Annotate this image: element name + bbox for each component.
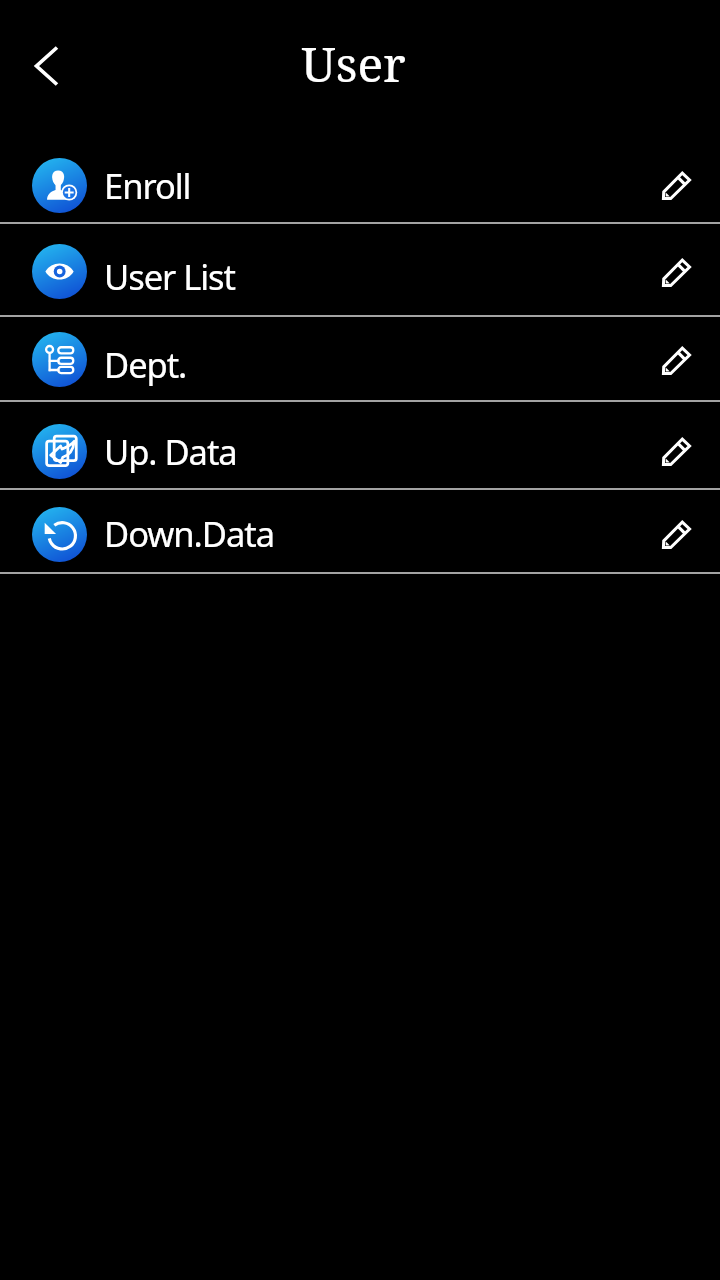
button[interactable]: Edit User List xyxy=(652,248,700,296)
staticText: User xyxy=(301,31,406,96)
button[interactable] xyxy=(0,490,720,574)
button[interactable] xyxy=(0,135,720,224)
staticText: Up. Data xyxy=(104,428,237,475)
staticText: Down.Data xyxy=(104,510,274,557)
button[interactable]: Edit Down.Data xyxy=(652,510,700,558)
staticText: Dept. xyxy=(104,341,187,388)
button[interactable]: Edit Up. Data xyxy=(652,427,700,475)
button[interactable]: Back xyxy=(16,36,76,96)
button[interactable]: Edit Enroll xyxy=(652,161,700,209)
button[interactable] xyxy=(0,402,720,490)
staticText: Enroll xyxy=(104,162,191,209)
button[interactable]: Edit Dept. xyxy=(652,336,700,384)
button[interactable] xyxy=(0,224,720,317)
staticText: User List xyxy=(104,253,235,300)
button[interactable] xyxy=(0,317,720,402)
